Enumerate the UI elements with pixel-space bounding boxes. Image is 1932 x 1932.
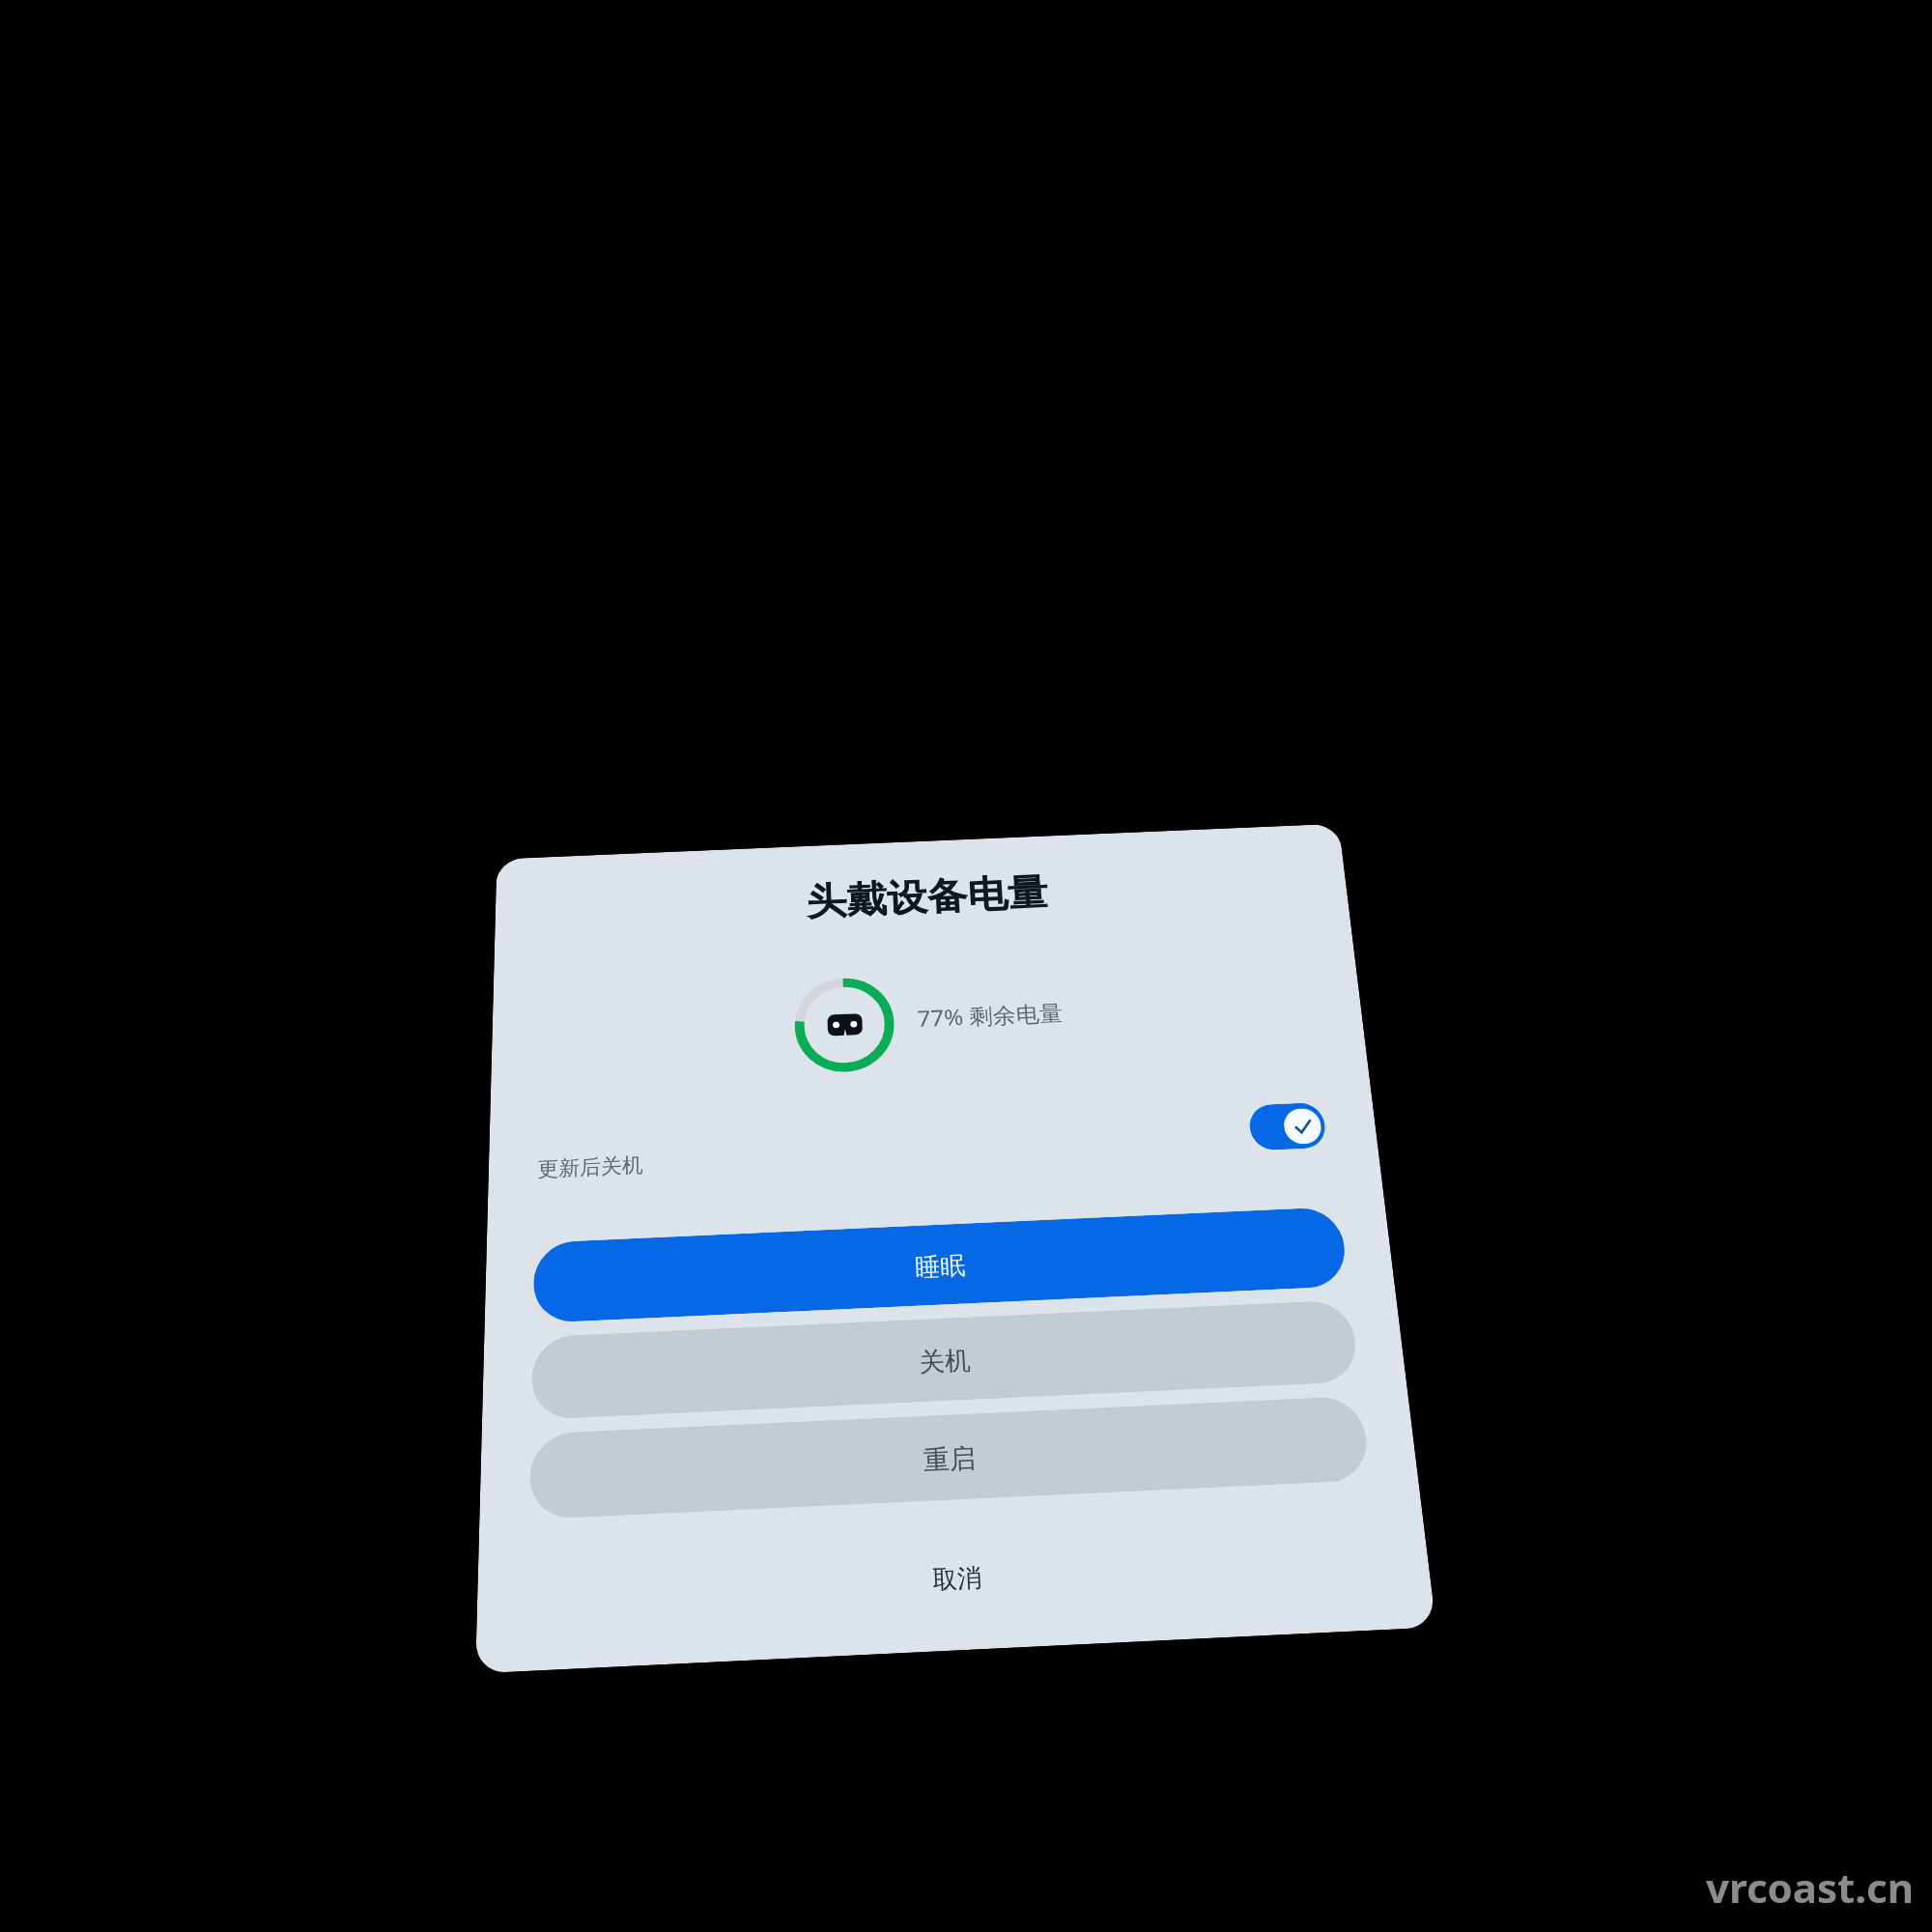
button[interactable]: 更新后关机 [526,1092,1342,1199]
staticText: 关机 [918,1344,971,1379]
staticText: 头戴设备电量 [806,869,1049,926]
other: Headset battery 77 percent [794,976,896,1074]
button[interactable]: 取消 [476,1514,1433,1643]
button[interactable]: 睡眠 [533,1207,1349,1323]
staticText: 77% 剩余电量 [916,997,1064,1033]
staticText: 重启 [923,1442,976,1478]
staticText: 睡眠 [914,1250,966,1284]
staticText: 取消 [932,1562,983,1596]
button[interactable]: 重启 [529,1395,1371,1520]
staticText: vrcoast.cn [1706,1860,1915,1915]
button[interactable]: 关机 [531,1300,1360,1420]
staticText: 更新后关机 [537,1152,643,1183]
button[interactable]: Power off after update [1248,1102,1327,1151]
